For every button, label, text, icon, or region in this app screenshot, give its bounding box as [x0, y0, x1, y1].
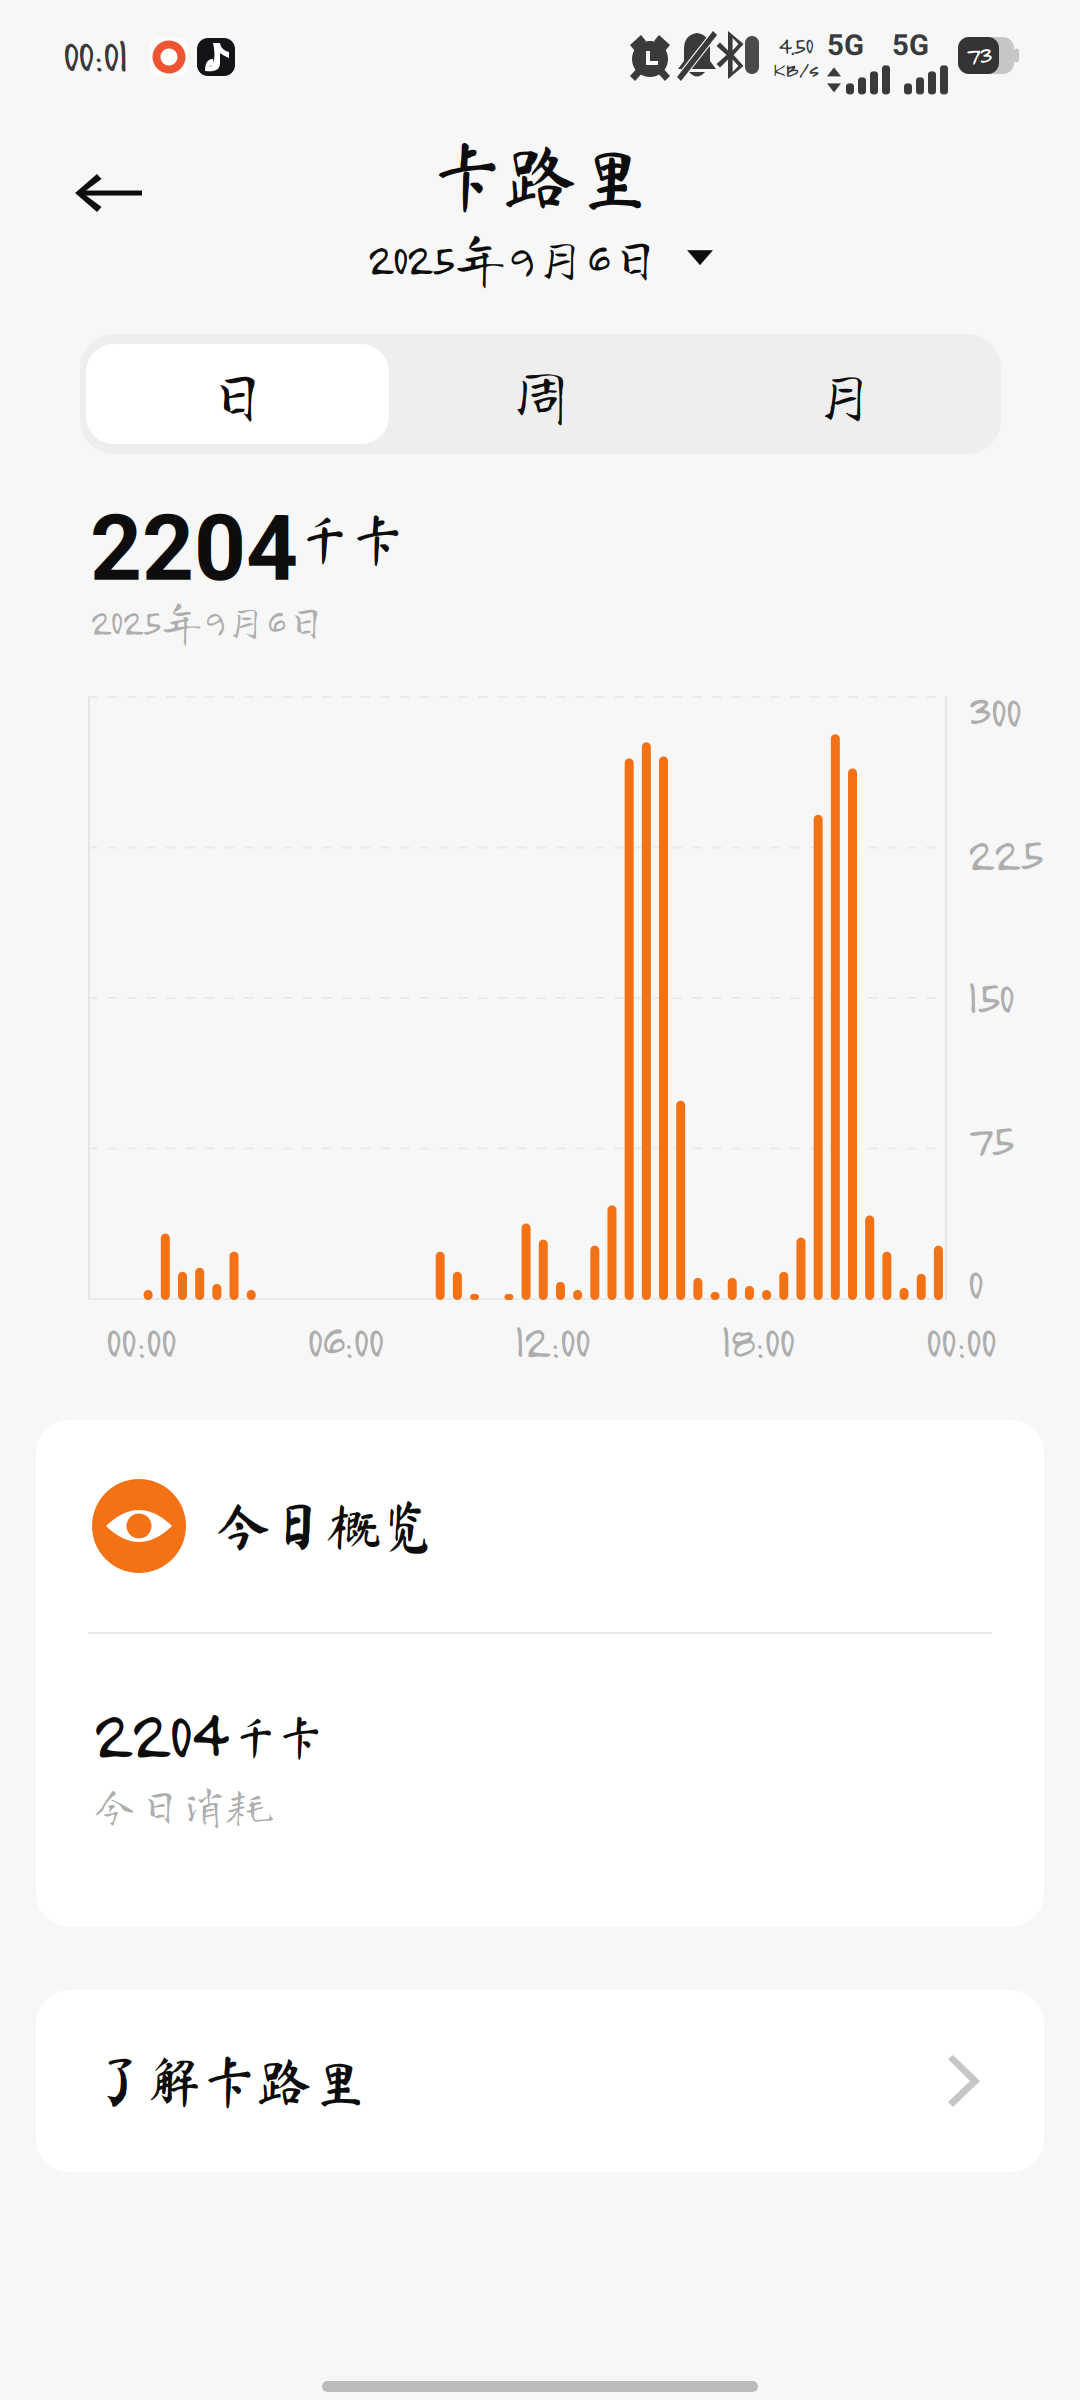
staticText: 00:01 — [62, 24, 127, 83]
staticText: 73 — [965, 38, 991, 70]
staticText: 2025年9月6日 — [90, 599, 328, 643]
staticText: 0 — [967, 1254, 982, 1310]
staticText: 5G — [827, 28, 864, 62]
button[interactable]: 月 — [692, 344, 995, 444]
button[interactable]: 了解卡路里 — [36, 1990, 1044, 2172]
staticText: 今日消耗 — [92, 1782, 272, 1827]
staticText: 千卡 — [298, 513, 404, 566]
staticText: 225 — [967, 825, 1041, 881]
staticText: 5G — [892, 28, 929, 62]
staticText: 日 — [204, 361, 271, 427]
staticText: 4.50 — [778, 30, 813, 59]
staticText: 75 — [967, 1111, 1012, 1167]
staticText: KB/s — [773, 55, 818, 82]
staticText: 卡路里 — [430, 139, 649, 212]
staticText: 千卡 — [233, 1715, 323, 1760]
staticText: 12:00 — [514, 1312, 589, 1368]
button[interactable]: 2025年9月6日 — [349, 222, 731, 293]
staticText: 18:00 — [720, 1312, 793, 1368]
button[interactable]: Back — [0, 158, 218, 228]
staticText: 06:00 — [306, 1312, 382, 1368]
staticText: 周 — [507, 361, 574, 427]
staticText: 月 — [810, 361, 877, 427]
staticText: 2025年9月6日 — [367, 230, 663, 285]
staticText: 150 — [967, 968, 1013, 1024]
staticText: 了解卡路里 — [92, 2054, 367, 2108]
staticText: 今日概览 — [216, 1499, 436, 1553]
staticText: 00:00 — [105, 1312, 175, 1368]
staticText: 300 — [967, 682, 1020, 738]
staticText: 2204 — [92, 1691, 225, 1774]
button[interactable]: 周 — [389, 344, 692, 444]
button[interactable]: 日 — [86, 344, 389, 444]
staticText: 00:00 — [925, 1312, 995, 1368]
staticText: 2204 — [90, 496, 298, 602]
